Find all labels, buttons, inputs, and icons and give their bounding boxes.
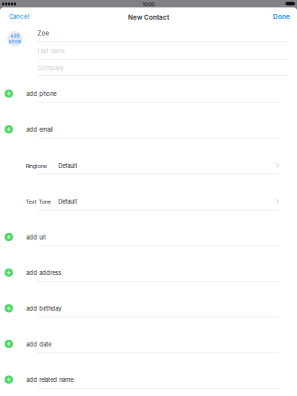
staticText: add birthday [26,305,61,312]
staticText: Ringtone [26,163,47,169]
button[interactable]: Cancel [9,14,31,20]
staticText: add url [26,234,45,241]
staticText: Default [58,198,77,205]
staticText: Text Tone [26,199,51,205]
button[interactable]: add address [0,259,279,287]
staticText: add [10,33,19,39]
staticText: photo [8,39,21,44]
button[interactable]: add email [0,115,279,143]
staticText: add email [26,126,52,133]
staticText: Done [273,13,290,20]
staticText: Default [58,162,77,169]
staticText: add related name [26,376,73,383]
staticText: add phone [26,90,56,97]
button[interactable]: Done [273,14,290,20]
staticText: Last name [38,48,65,55]
button[interactable]: add birthday [0,294,279,322]
button[interactable]: Add photo [7,31,23,46]
staticText: Company [38,64,64,72]
staticText: add address [26,269,61,276]
button[interactable]: add date [0,330,279,358]
staticText: 10:00 [142,1,154,7]
staticText: add date [26,341,51,348]
staticText: Cancel [9,13,29,20]
button[interactable]: add related name [0,366,279,394]
button[interactable]: add phone [0,80,279,108]
button[interactable]: Last name [0,41,288,59]
staticText: Zoe [38,30,49,37]
button[interactable]: Ringtone [0,151,284,179]
button[interactable]: Text Tone [0,187,284,215]
button[interactable]: add url [0,223,279,251]
button[interactable]: Company [0,58,288,76]
button[interactable]: Zoe [0,23,288,41]
staticText: New Contact [128,14,169,21]
